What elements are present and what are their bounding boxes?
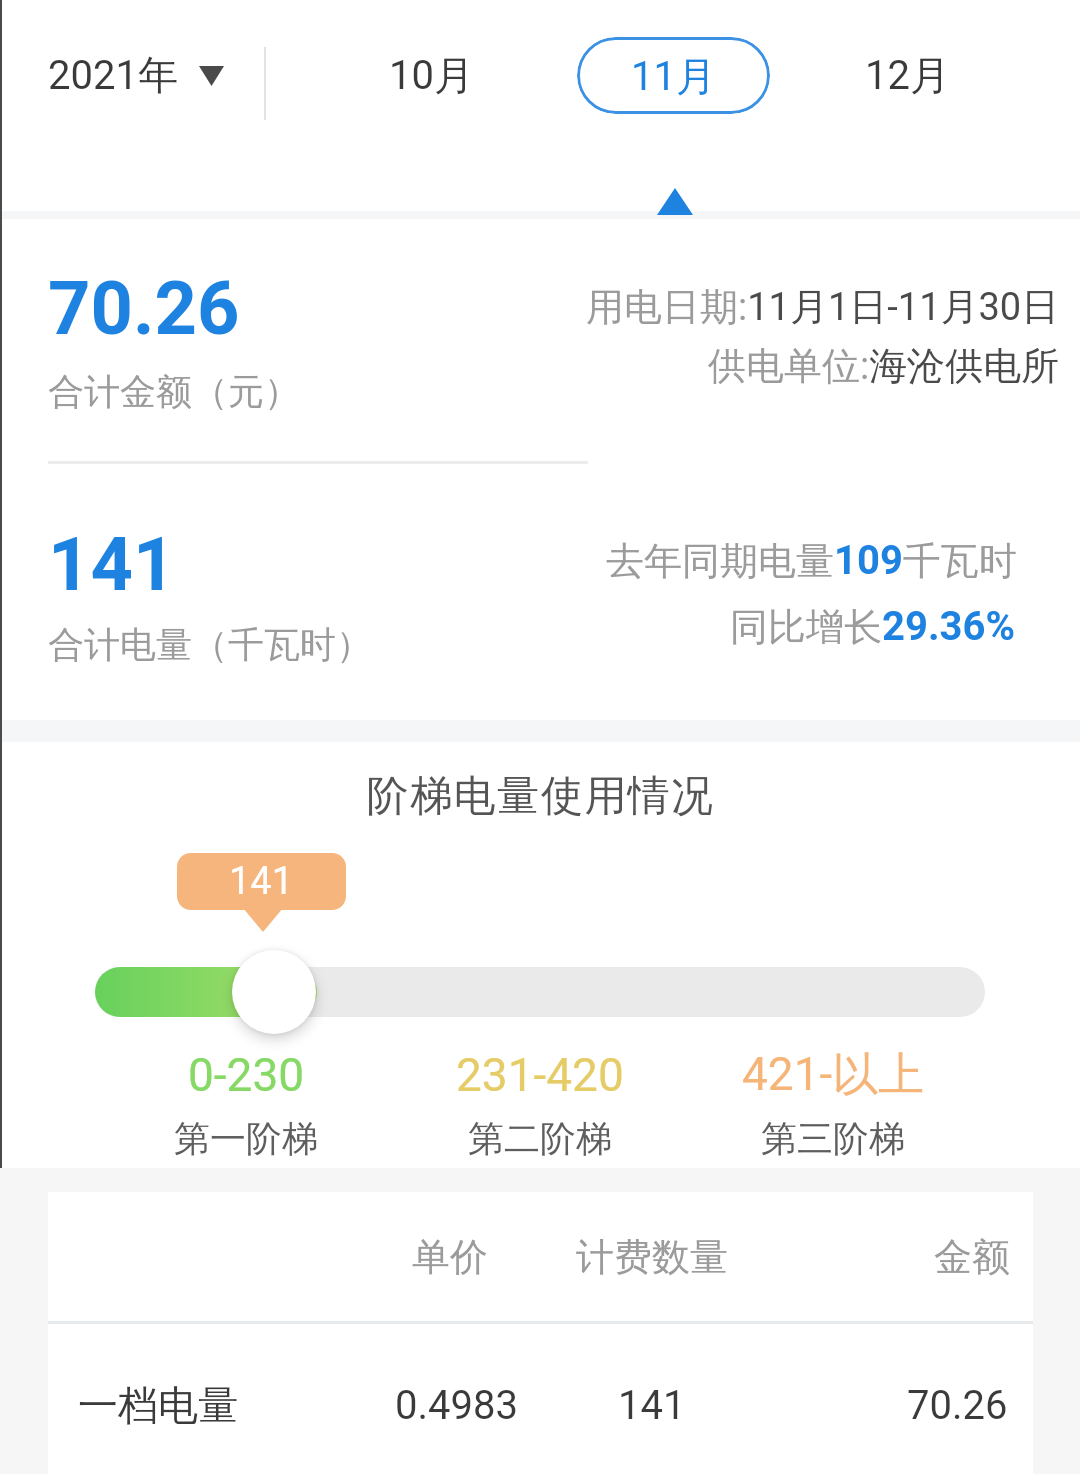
staticText: 421-以上 [742, 1046, 925, 1104]
staticText: 金额 [934, 1233, 1010, 1281]
staticText: 一档电量 [78, 1380, 238, 1430]
staticText: 141 [229, 859, 294, 904]
staticText: 70.26 [48, 265, 240, 352]
staticText: 10月 [389, 50, 474, 100]
staticText: 阶梯电量使用情况 [366, 770, 714, 823]
staticText: 第三阶梯 [761, 1116, 905, 1161]
staticText: 计费数量 [576, 1233, 728, 1281]
staticText: 去年同期电量109千瓦时 [606, 537, 1017, 585]
button[interactable]: 2021年 [48, 50, 228, 100]
staticText: 第一阶梯 [174, 1116, 318, 1161]
staticText: 合计金额（元） [48, 369, 300, 414]
staticText: 141 [48, 521, 176, 608]
staticText: 70.26 [907, 1382, 1008, 1429]
staticText: 2021年 [48, 50, 178, 100]
button[interactable]: 12月 [827, 40, 987, 110]
staticText: 同比增长29.36% [730, 603, 1015, 651]
staticText: 12月 [865, 50, 950, 100]
button[interactable] [232, 950, 316, 1034]
staticText: 用电日期:11月1日-11月30日 [586, 283, 1060, 331]
staticText: 141 [618, 1382, 686, 1429]
staticText: 231-420 [456, 1048, 624, 1102]
button[interactable]: 11月 [577, 37, 770, 114]
staticText: 供电单位:海沧供电所 [708, 342, 1060, 390]
staticText: 11月 [631, 51, 716, 101]
staticText: 第二阶梯 [468, 1116, 612, 1161]
staticText: 0.4983 [395, 1382, 518, 1429]
staticText: 单价 [412, 1233, 488, 1281]
staticText: 合计电量（千瓦时） [48, 622, 372, 667]
staticText: 0-230 [188, 1048, 305, 1102]
button[interactable]: 10月 [351, 40, 511, 110]
